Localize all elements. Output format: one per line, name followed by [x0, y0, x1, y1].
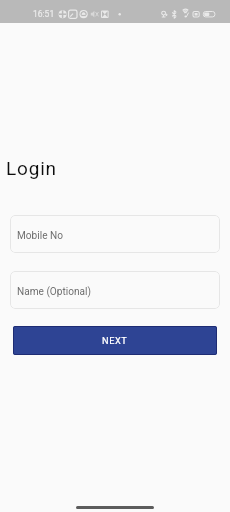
staticText: Mobile No — [17, 230, 63, 242]
staticText: 16:51 — [33, 9, 55, 19]
staticText: NEXT — [102, 335, 128, 346]
staticText: Login — [6, 157, 57, 179]
button[interactable]: Name (Optional) — [10, 271, 220, 309]
staticText: Name (Optional) — [17, 286, 92, 298]
button[interactable]: Mobile No — [10, 215, 220, 253]
button[interactable]: NEXT — [13, 326, 217, 355]
